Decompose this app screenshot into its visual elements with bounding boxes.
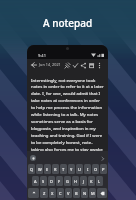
button[interactable]: S	[40, 176, 47, 186]
button[interactable]: A	[32, 176, 39, 186]
button[interactable]: W	[36, 164, 43, 174]
button[interactable]: P	[100, 164, 107, 174]
button[interactable]: L	[96, 176, 103, 186]
button[interactable]: Pin note	[63, 61, 71, 69]
staticText: M	[91, 191, 95, 196]
staticText: J	[83, 179, 85, 184]
staticText: T	[62, 167, 65, 172]
staticText: F	[58, 179, 61, 184]
button[interactable]: V	[65, 188, 72, 198]
staticText: Interestingly, not everyone took notes i…	[31, 77, 105, 159]
button[interactable]: Voice input	[30, 155, 36, 161]
staticText: B	[75, 191, 78, 196]
staticText: Q	[30, 167, 34, 172]
staticText: U	[78, 167, 81, 172]
staticText: P	[102, 167, 105, 172]
staticText: D	[50, 179, 53, 184]
button[interactable]: G	[64, 176, 71, 186]
button[interactable]: Shift	[28, 188, 39, 198]
staticText: R	[54, 167, 57, 172]
staticText: C	[59, 191, 62, 196]
button[interactable]: F	[56, 176, 63, 186]
button[interactable]: N	[81, 188, 88, 198]
staticText: V	[67, 191, 70, 196]
staticText: A	[34, 179, 37, 184]
button[interactable]: Expand toolbar	[100, 155, 106, 161]
staticText: 9:41	[38, 53, 46, 58]
button[interactable]: D	[48, 176, 55, 186]
button[interactable]: M	[89, 188, 96, 198]
button[interactable]: Backspace	[97, 188, 107, 198]
staticText: I	[87, 167, 89, 172]
staticText: S	[42, 179, 45, 184]
button[interactable]: Q	[28, 164, 35, 174]
staticText: L	[98, 179, 101, 184]
staticText: E	[46, 167, 49, 172]
staticText: O	[94, 167, 98, 172]
button[interactable]: Done	[71, 61, 79, 69]
button[interactable]: K	[88, 176, 95, 186]
button[interactable]: Share	[79, 61, 87, 69]
staticText: W	[38, 167, 42, 172]
button[interactable]: T	[60, 164, 67, 174]
button[interactable]: Archive	[87, 61, 95, 69]
staticText: Y	[70, 167, 73, 172]
button[interactable]: Z	[40, 188, 48, 198]
button[interactable]: R	[52, 164, 59, 174]
staticText: Z	[43, 191, 46, 196]
staticText: H	[74, 179, 77, 184]
staticText: X	[51, 191, 54, 196]
button[interactable]: O	[92, 164, 99, 174]
button[interactable]: More options	[95, 61, 103, 69]
button[interactable]: J	[80, 176, 87, 186]
staticText: A notepad	[43, 16, 93, 30]
button[interactable]: E	[44, 164, 51, 174]
button[interactable]: C	[57, 188, 64, 198]
button[interactable]: Back	[29, 60, 38, 69]
button[interactable]: B	[73, 188, 80, 198]
button[interactable]: I	[84, 164, 91, 174]
staticText: N	[83, 191, 87, 196]
staticText: Jun 14, 2021	[39, 62, 61, 67]
button[interactable]: H	[72, 176, 79, 186]
button[interactable]: Y	[68, 164, 75, 174]
staticText: K	[90, 179, 93, 184]
button[interactable]: U	[76, 164, 83, 174]
button[interactable]: X	[49, 188, 56, 198]
staticText: G	[66, 179, 69, 184]
